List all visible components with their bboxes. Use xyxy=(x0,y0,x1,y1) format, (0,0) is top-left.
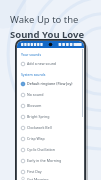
staticText: No sound xyxy=(27,92,44,97)
button[interactable]: Default ringtone (Flow Joy) xyxy=(20,78,81,89)
staticText: Got Morning xyxy=(27,177,49,180)
staticText: Add a new sound xyxy=(27,61,57,66)
button[interactable]: Early in the Morning xyxy=(20,155,81,166)
staticText: Cyclic Oscillation xyxy=(27,147,56,152)
button[interactable]: Got Morning xyxy=(20,177,81,180)
button[interactable]: Bright Spring xyxy=(20,111,81,122)
staticText: Wake Up to the xyxy=(10,13,79,26)
button[interactable]: Add a new sound xyxy=(20,58,81,69)
staticText: Your sounds xyxy=(21,52,42,57)
staticText: First Day xyxy=(27,169,42,174)
staticText: Early in the Morning xyxy=(27,158,62,163)
staticText: System sounds xyxy=(21,72,46,77)
button[interactable]: Cyclic Oscillation xyxy=(20,144,81,155)
button[interactable]: Crisp Wisp xyxy=(20,133,81,144)
button[interactable]: Clockwork Bell xyxy=(20,122,81,133)
button[interactable]: No sound xyxy=(20,89,81,100)
staticText: Crisp Wisp xyxy=(27,136,45,141)
staticText: Bright Spring xyxy=(27,114,50,119)
staticText: Sound You Love xyxy=(10,28,85,41)
button[interactable]: Blossom xyxy=(20,100,81,111)
staticText: Clockwork Bell xyxy=(27,125,52,130)
button[interactable]: First Day xyxy=(20,166,81,177)
staticText: Blossom xyxy=(27,103,42,108)
staticText: Default ringtone (Flow Joy) xyxy=(27,81,73,86)
